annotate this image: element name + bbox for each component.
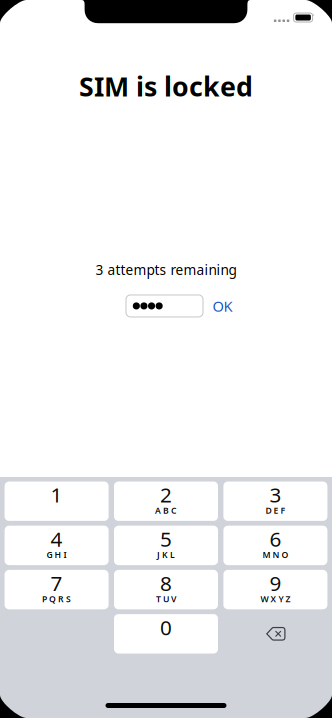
button[interactable]: 1 bbox=[5, 481, 109, 521]
staticText: 4 bbox=[51, 525, 63, 553]
button[interactable]: OK bbox=[203, 295, 242, 317]
staticText: 3 bbox=[269, 480, 281, 509]
staticText: T U V bbox=[156, 593, 176, 605]
staticText: A B C bbox=[155, 505, 177, 516]
button[interactable]: 7 bbox=[5, 570, 109, 609]
button[interactable]: 6 bbox=[223, 526, 327, 565]
button[interactable]: 4 bbox=[5, 526, 109, 565]
staticText: 9 bbox=[269, 569, 281, 597]
button[interactable]: 9 bbox=[223, 570, 327, 609]
button[interactable]: 2 bbox=[114, 481, 218, 521]
staticText: SIM is locked bbox=[79, 68, 253, 104]
staticText: OK bbox=[212, 296, 232, 316]
staticText: 7 bbox=[51, 569, 63, 597]
staticText: 1 bbox=[51, 480, 63, 509]
button[interactable]: 5 bbox=[114, 526, 218, 565]
staticText: 2 bbox=[160, 480, 172, 509]
staticText: 3 attempts remaining bbox=[95, 260, 236, 279]
staticText: P Q R S bbox=[42, 593, 71, 605]
staticText: G H I bbox=[47, 549, 67, 561]
button[interactable]: 0 bbox=[114, 614, 218, 653]
staticText: 8 bbox=[160, 569, 172, 597]
staticText: D E F bbox=[265, 505, 285, 516]
button[interactable]: 8 bbox=[114, 570, 218, 609]
button[interactable]: Delete bbox=[223, 614, 327, 653]
staticText: 5 bbox=[160, 525, 172, 553]
staticText: J K L bbox=[157, 549, 175, 561]
staticText: M N O bbox=[262, 549, 288, 561]
staticText: 0 bbox=[160, 613, 172, 641]
button[interactable]: 3 bbox=[223, 481, 327, 521]
staticText: W X Y Z bbox=[260, 593, 290, 605]
staticText: 6 bbox=[269, 525, 281, 553]
